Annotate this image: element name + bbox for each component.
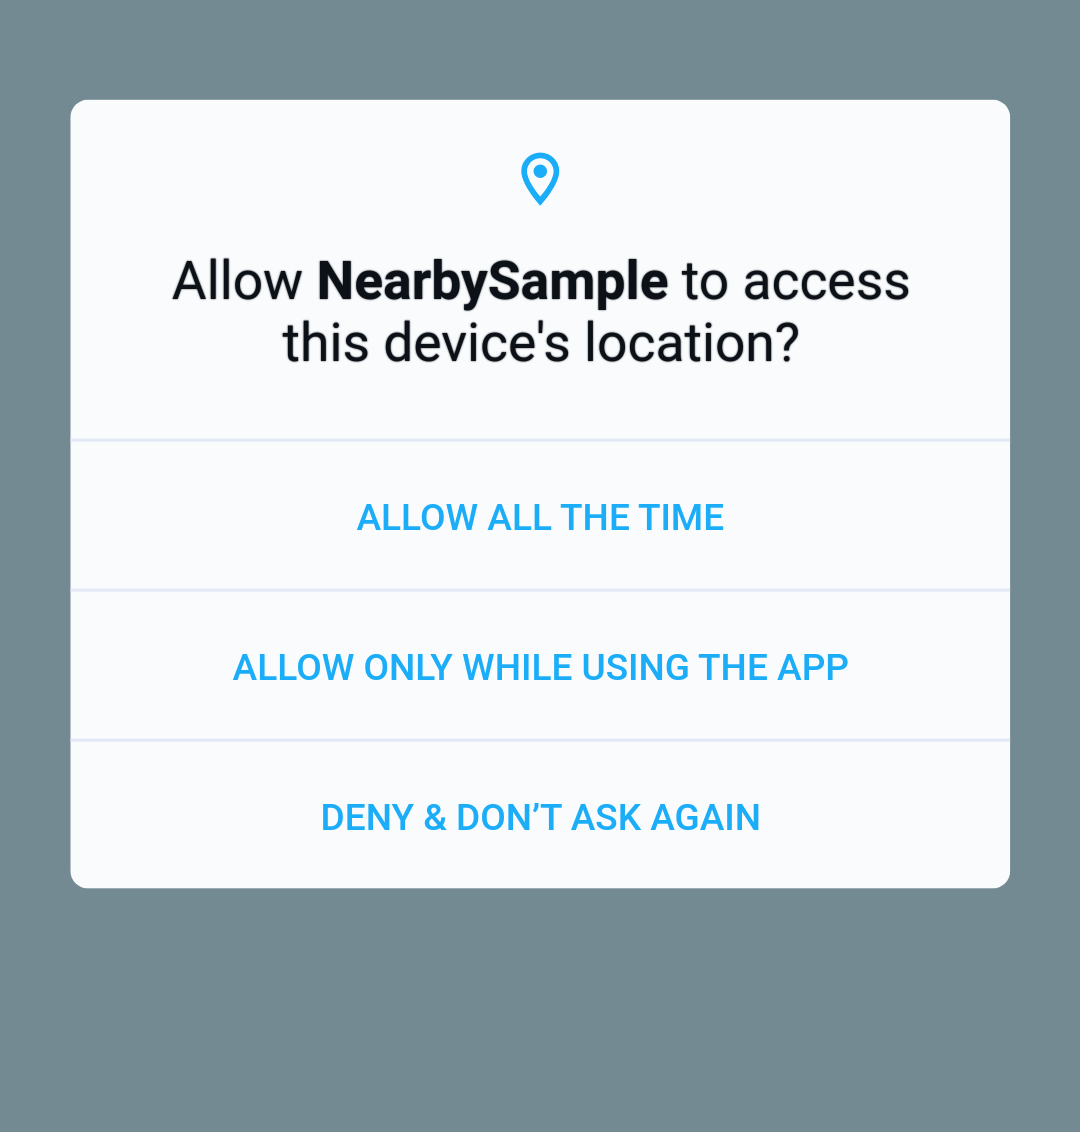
staticText: ALLOW ALL THE TIME [356, 496, 724, 539]
button[interactable]: ALLOW ALL THE TIME [70, 442, 1010, 589]
staticText: ALLOW ONLY WHILE USING THE APP [232, 646, 849, 689]
button[interactable]: DENY & DON’T ASK AGAIN [70, 742, 1010, 889]
staticText: Allow NearbySample to access this device… [161, 249, 921, 375]
button[interactable]: ALLOW ONLY WHILE USING THE APP [70, 592, 1010, 739]
staticText: DENY & DON’T ASK AGAIN [320, 796, 761, 839]
other: Location [521, 153, 559, 206]
